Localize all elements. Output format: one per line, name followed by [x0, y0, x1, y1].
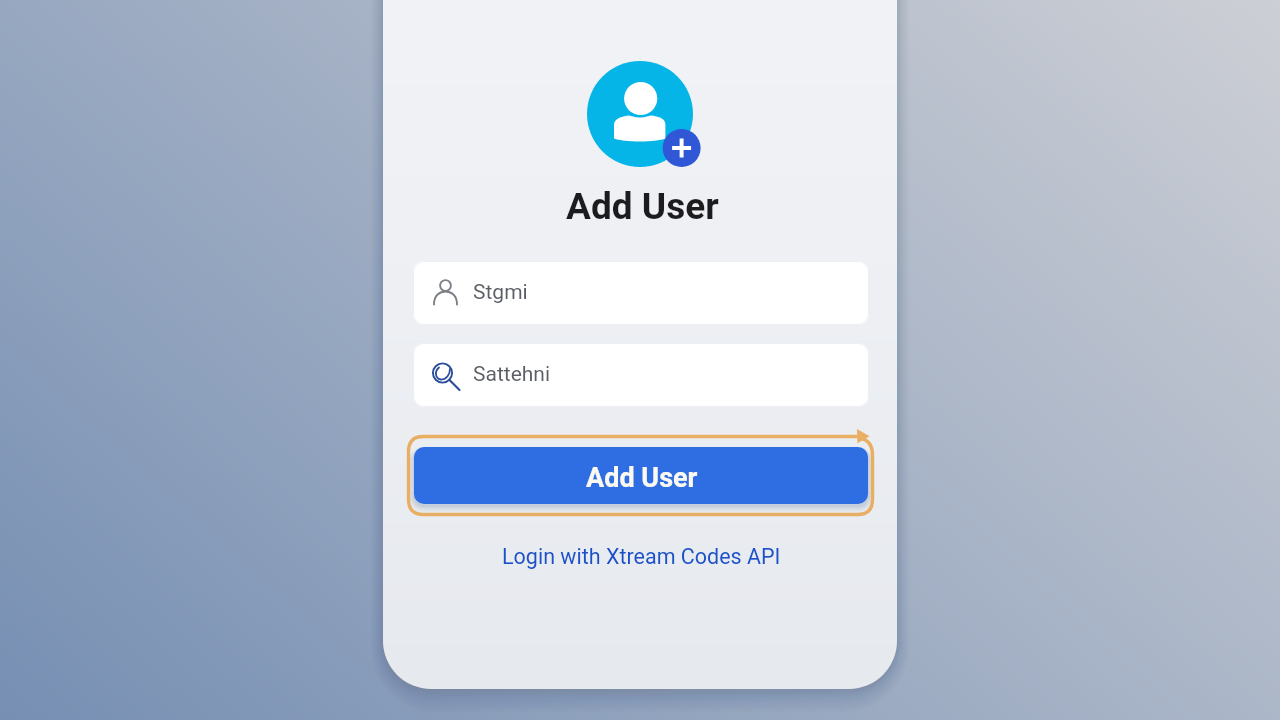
button[interactable]: Add User — [414, 447, 868, 504]
button[interactable]: Sattehni — [413, 343, 869, 407]
button[interactable]: Login with Xtream Codes API — [384, 541, 898, 571]
staticText: Add User — [566, 185, 719, 228]
staticText: Stgmi — [473, 280, 528, 305]
staticText: Add User — [586, 462, 698, 494]
other: Add user avatar — [586, 60, 702, 170]
staticText: Login with Xtream Codes API — [502, 544, 781, 569]
staticText: Sattehni — [473, 362, 551, 387]
button[interactable]: Stgmi — [413, 261, 869, 325]
